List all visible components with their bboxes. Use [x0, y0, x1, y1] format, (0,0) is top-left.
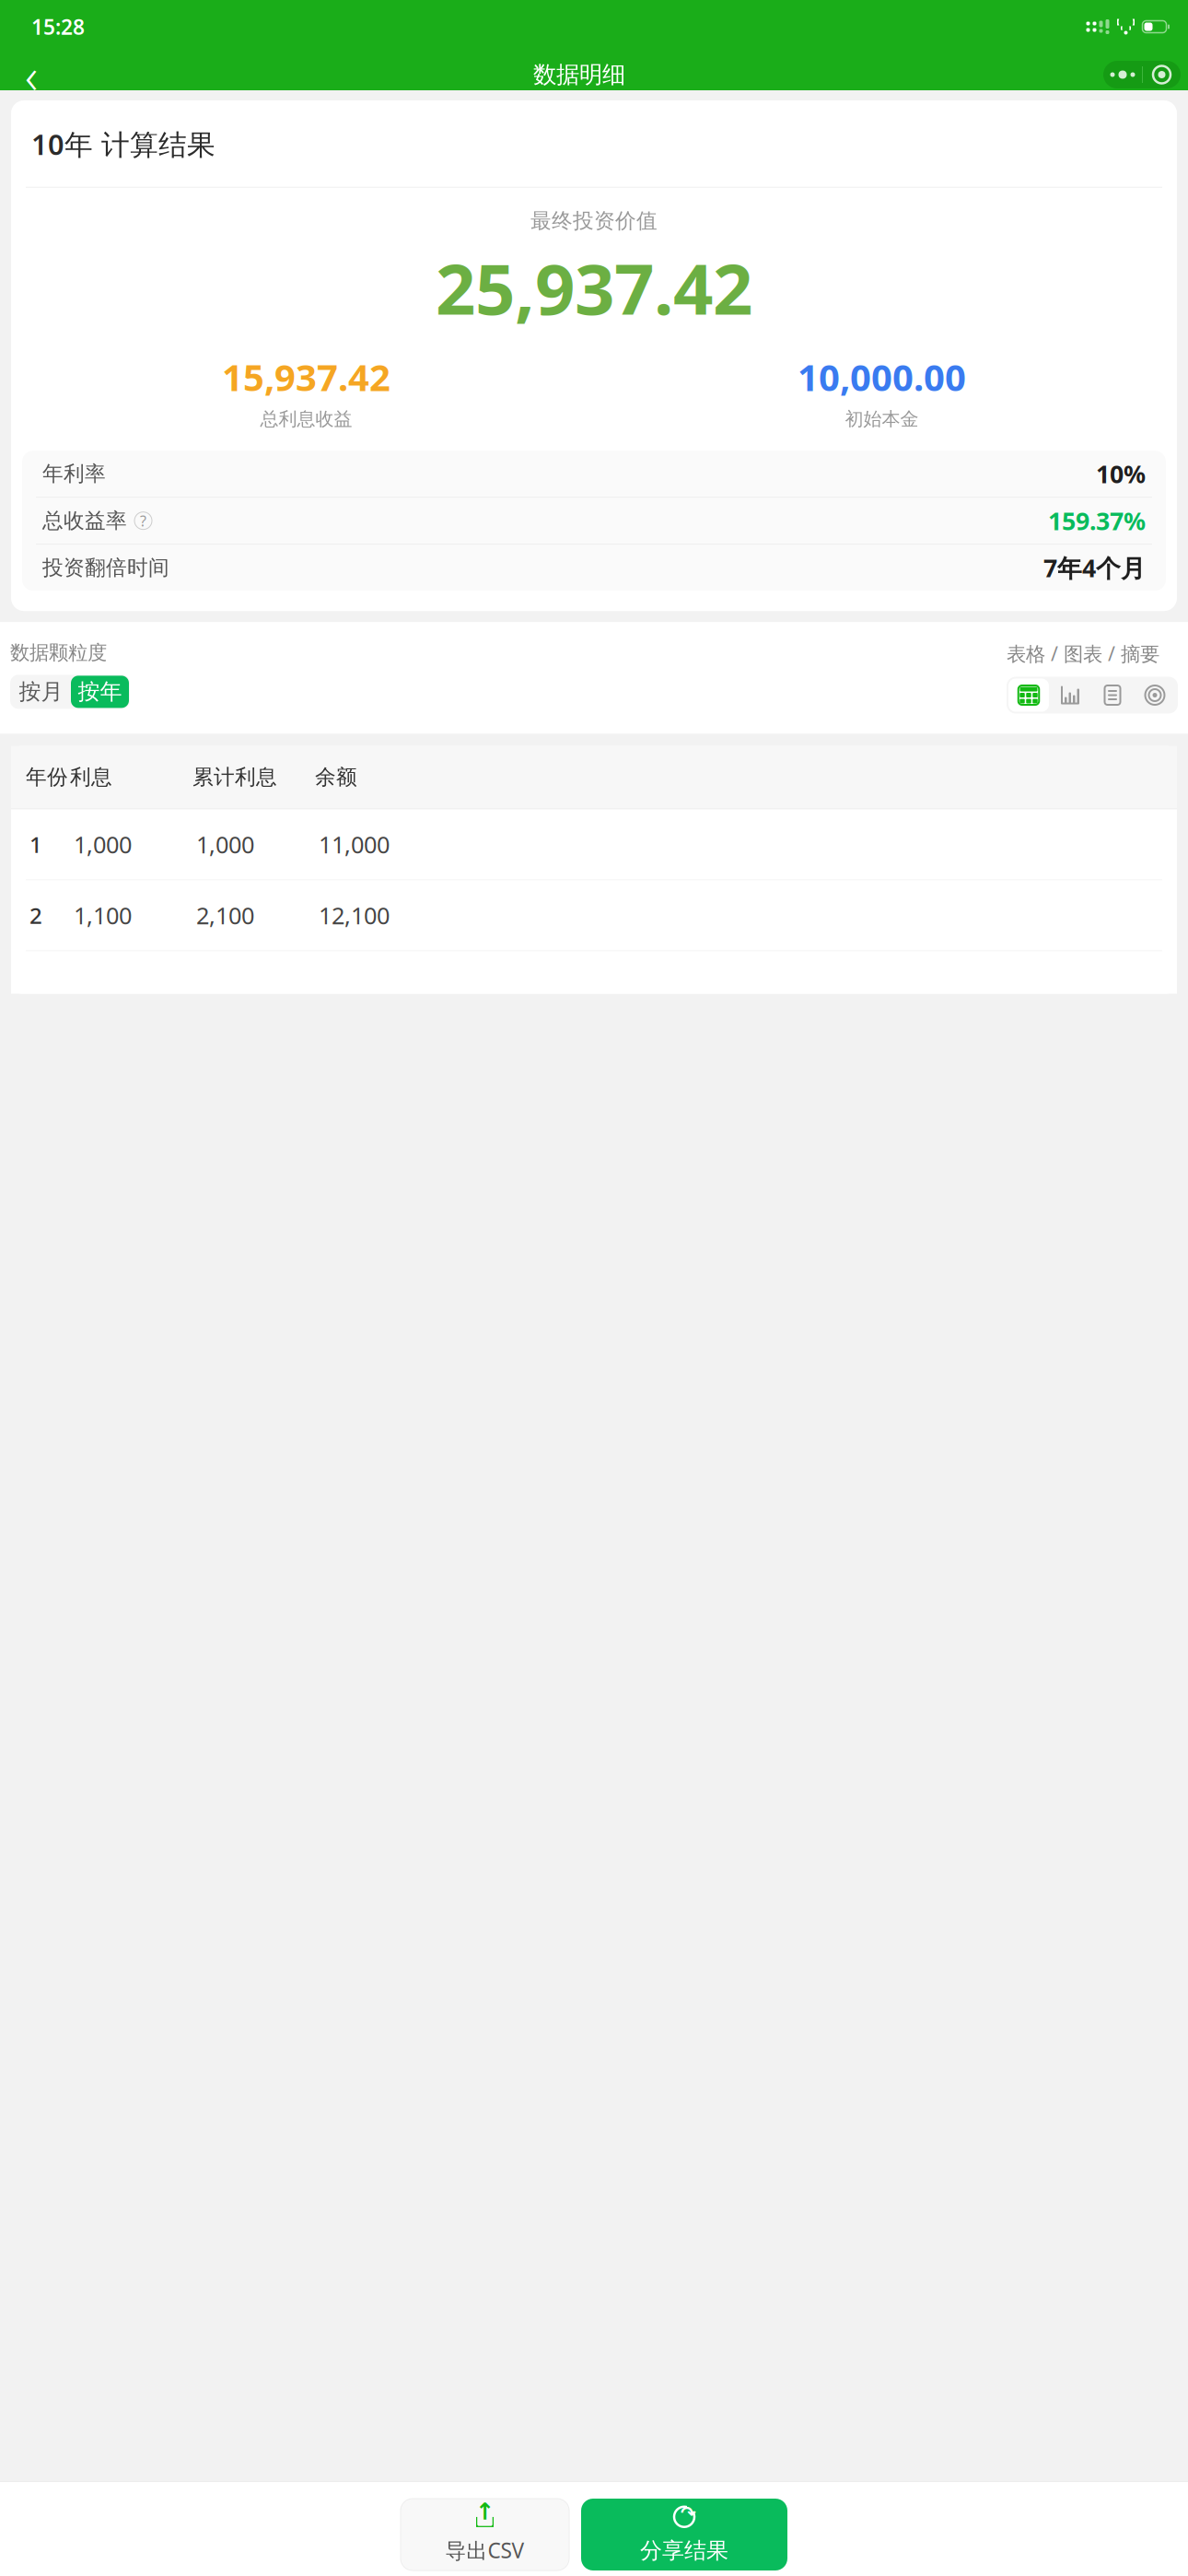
- staticText: 按月: [19, 678, 63, 705]
- staticText: 25,937.42: [436, 241, 752, 334]
- button[interactable]: ↑: [401, 2499, 569, 2570]
- staticText: 1,000: [74, 829, 132, 860]
- button[interactable]: 关闭: [1143, 61, 1181, 88]
- staticText: 总利息收益: [260, 408, 352, 430]
- button[interactable]: 返回: [7, 54, 55, 95]
- staticText: 15,937.42: [222, 352, 390, 401]
- staticText: 7年4个月: [1043, 551, 1146, 584]
- button[interactable]: 按年: [71, 676, 129, 708]
- staticText: 2,100: [196, 900, 254, 931]
- staticText: 10,000.00: [798, 352, 966, 401]
- staticText: 11,000: [319, 829, 390, 860]
- button[interactable]: 目标: [1134, 679, 1176, 712]
- staticText: 1,100: [74, 900, 132, 931]
- staticText: 10%: [1096, 457, 1146, 490]
- staticText: 利息: [70, 764, 112, 790]
- staticText: 年利率: [42, 461, 106, 487]
- staticText: 年份: [26, 764, 68, 790]
- staticText: 累计利息: [192, 764, 277, 790]
- staticText: 投资翻倍时间: [42, 555, 169, 581]
- staticText: 1,000: [196, 829, 254, 860]
- staticText: 数据明细: [533, 60, 625, 89]
- staticText: 导出CSV: [445, 2536, 524, 2564]
- staticText: 1: [29, 830, 42, 859]
- button[interactable]: 按月: [11, 676, 71, 708]
- staticText: ↷: [681, 2503, 696, 2524]
- staticText: 余额: [315, 764, 357, 790]
- staticText: 12,100: [319, 900, 390, 931]
- staticText: 按年: [78, 678, 122, 705]
- staticText: 表格 / 图表 / 摘要: [1007, 640, 1159, 667]
- staticText: ↑: [475, 2498, 495, 2525]
- staticText: 10年 计算结果: [31, 125, 215, 163]
- staticText: 初始本金: [845, 408, 919, 430]
- staticText: ?: [140, 511, 146, 530]
- button[interactable]: 摘要: [1091, 679, 1134, 712]
- button[interactable]: 表格: [1008, 679, 1049, 712]
- staticText: 最终投资价值: [530, 208, 658, 234]
- staticText: ‹: [25, 42, 38, 107]
- button[interactable]: 图表: [1049, 679, 1091, 712]
- staticText: 分享结果: [640, 2537, 728, 2564]
- button[interactable]: 更多: [1103, 61, 1142, 88]
- staticText: 数据颗粒度: [10, 640, 107, 665]
- staticText: 159.37%: [1048, 504, 1146, 537]
- staticText: 总收益率: [42, 508, 127, 534]
- button[interactable]: ↷: [581, 2499, 787, 2570]
- staticText: 2: [29, 901, 42, 930]
- staticText: 15:28: [31, 13, 85, 41]
